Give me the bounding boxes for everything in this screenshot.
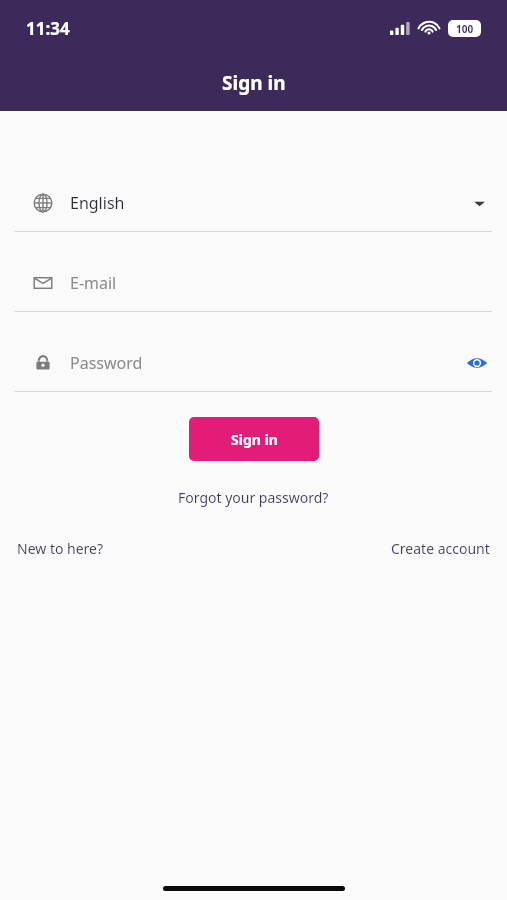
button[interactable]: Create account <box>381 534 500 563</box>
staticText: Forgot your password? <box>178 488 329 507</box>
button[interactable]: Sign in <box>189 417 319 461</box>
button[interactable]: Forgot your password? <box>168 483 339 512</box>
button[interactable]: Open language list <box>466 190 492 216</box>
staticText: English <box>70 192 466 214</box>
staticText: 11:34 <box>26 17 70 40</box>
staticText: Sign in <box>231 430 278 449</box>
button[interactable]: Show password <box>462 348 492 378</box>
staticText: 100 <box>456 22 474 36</box>
button[interactable]: New to here? <box>7 534 114 563</box>
button[interactable]: Select language, English <box>0 175 507 232</box>
staticText: Password <box>70 352 462 374</box>
staticText: Create account <box>391 539 490 558</box>
staticText: E-mail <box>70 272 492 294</box>
button[interactable]: E-mail <box>0 255 507 312</box>
button[interactable]: Password <box>0 335 507 392</box>
staticText: New to here? <box>17 539 104 558</box>
staticText: Sign in <box>222 70 286 96</box>
